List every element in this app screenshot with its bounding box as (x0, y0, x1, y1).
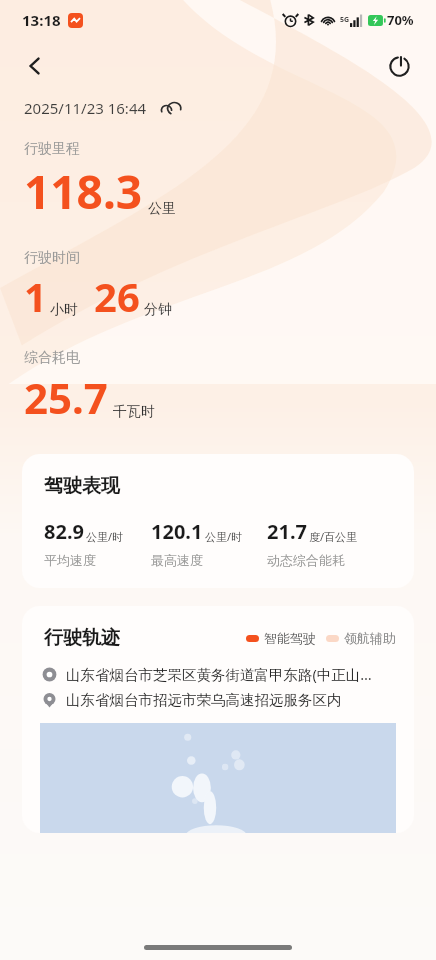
button[interactable] (40, 723, 396, 833)
staticText: 2025/11/23 16:44 (24, 98, 147, 118)
button[interactable]: 山东省烟台市芝罘区黄务街道富甲东路(中正山… (22, 664, 414, 684)
staticText: 度/百公里 (309, 529, 358, 544)
staticText: 118.3 (24, 160, 143, 223)
staticText: 82.9 (44, 518, 84, 545)
button[interactable]: 山东省烟台市招远市荣乌高速招远服务区内 (22, 691, 414, 709)
staticText: 70% (387, 11, 414, 29)
staticText: 5G (340, 15, 350, 25)
staticText: 26 (94, 269, 140, 323)
staticText: 驾驶表现 (44, 474, 120, 498)
staticText: 平均速度 (44, 552, 96, 568)
staticText: 山东省烟台市招远市荣乌高速招远服务区内 (66, 691, 342, 709)
staticText: 领航辅助 (344, 630, 396, 646)
staticText: 最高速度 (151, 552, 203, 568)
staticText: 公里/时 (205, 529, 243, 544)
staticText: 120.1 (151, 518, 203, 545)
staticText: 动态综合能耗 (267, 552, 345, 568)
staticText: 综合耗电 (24, 349, 80, 367)
button[interactable]: 驾驶表现 (22, 454, 414, 588)
staticText: 小时 (50, 301, 78, 319)
staticText: 行驶时间 (24, 249, 80, 267)
staticText: 行驶里程 (24, 140, 80, 158)
staticText: 山东省烟台市芝罘区黄务街道富甲东路(中正山… (66, 664, 372, 684)
staticText: 公里/时 (86, 529, 124, 544)
staticText: 公里 (148, 200, 176, 218)
button[interactable]: 智能驾驶 (246, 630, 316, 646)
staticText: 千瓦时 (113, 403, 155, 421)
staticText: 分钟 (144, 301, 172, 319)
staticText: 21.7 (267, 518, 307, 545)
staticText: 25.7 (24, 369, 108, 426)
button[interactable]: Refresh (378, 45, 420, 87)
button[interactable]: 领航辅助 (326, 630, 396, 646)
staticText: 13:18 (22, 10, 61, 30)
staticText: 行驶轨迹 (44, 626, 120, 650)
staticText: 智能驾驶 (264, 630, 316, 646)
staticText: 1 (24, 269, 47, 323)
button[interactable]: Back (14, 45, 56, 87)
